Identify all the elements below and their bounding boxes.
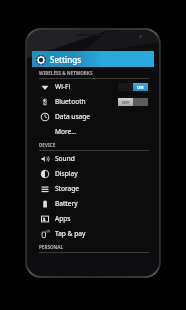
staticText: Apps	[55, 214, 71, 223]
staticText: Wi-Fi	[55, 82, 71, 91]
staticText: PERSONAL	[39, 244, 64, 250]
other: Settings	[36, 55, 46, 65]
staticText: OFF	[122, 100, 130, 105]
button[interactable]: Bluetooth	[32, 94, 154, 109]
staticText: Bluetooth	[55, 97, 86, 106]
staticText: WIRELESS & NETWORKS	[39, 70, 93, 76]
button[interactable]: Display	[32, 166, 154, 181]
button[interactable]: Battery	[32, 196, 154, 211]
staticText: Sound	[55, 154, 75, 163]
button[interactable]: Wi-Fi	[32, 79, 154, 94]
button[interactable]: More...	[32, 124, 154, 139]
button[interactable]: Data usage	[32, 109, 154, 124]
staticText: Storage	[55, 184, 80, 193]
staticText: Settings	[50, 54, 82, 65]
staticText: Data usage	[55, 112, 91, 121]
button[interactable]: Settings	[32, 51, 154, 67]
staticText: Battery	[55, 199, 78, 208]
button[interactable]: Off	[118, 98, 148, 106]
staticText: More...	[55, 127, 77, 136]
staticText: DEVICE	[39, 142, 56, 148]
button[interactable]: Sound	[32, 151, 154, 166]
staticText: Tap & pay	[55, 229, 86, 238]
staticText: Display	[55, 169, 78, 178]
button[interactable]: Storage	[32, 181, 154, 196]
button[interactable]: Tap & pay	[32, 226, 154, 241]
button[interactable]: Apps	[32, 211, 154, 226]
button[interactable]: On	[118, 83, 148, 91]
staticText: ON	[137, 85, 144, 90]
